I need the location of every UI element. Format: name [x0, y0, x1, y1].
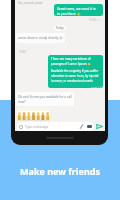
- staticText: Great news, we want it in: [57, 6, 96, 10]
- staticText: Available the majority if you suffer: [51, 69, 99, 73]
- staticText: 11:05 ✓✓: [91, 85, 102, 88]
- staticText: Make new friends: [20, 165, 100, 177]
- staticText: Type a message: [25, 125, 49, 129]
- button[interactable]: [17, 108, 50, 121]
- staticText: There are many variations of: [51, 57, 91, 61]
- staticText: 10:45: [19, 50, 26, 54]
- button[interactable]: There are many variations of: [48, 55, 103, 88]
- button[interactable]: Type a message: [17, 122, 94, 131]
- staticText: to you there 👍: [57, 11, 81, 15]
- staticText: Yes, sounds great: [18, 1, 43, 5]
- button[interactable]: come down n study shortly 😊: [16, 33, 65, 43]
- staticText: Today: [56, 26, 64, 30]
- button[interactable]: Send: [96, 123, 103, 130]
- staticText: alteration in some from, by injectd: [51, 74, 99, 78]
- button[interactable]: Great news, we want it in: [54, 4, 103, 16]
- staticText: Ok cool So are you available for a call: [18, 95, 72, 99]
- staticText: passages of Lorem Ipsum 👏: [51, 62, 91, 66]
- staticText: humour, or randomised words: [51, 79, 93, 83]
- staticText: 10:30 ✓✓: [89, 18, 101, 22]
- button[interactable]: Ok cool So are you available for a call: [16, 92, 74, 106]
- staticText: come down n study shortly 😊: [18, 36, 63, 40]
- staticText: now?: [18, 100, 26, 104]
